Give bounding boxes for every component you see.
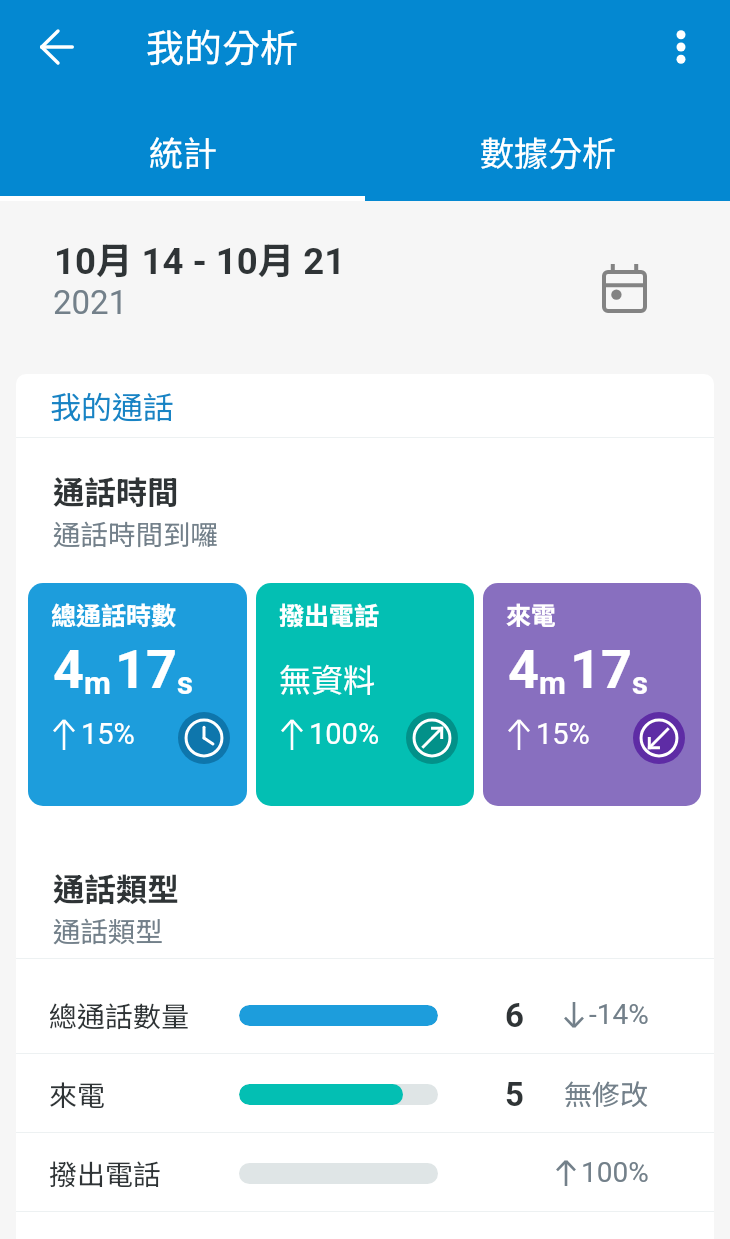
staticText: 2021	[53, 283, 128, 322]
staticText: 撥出電話	[49, 1153, 162, 1194]
staticText: 我的分析	[146, 18, 299, 73]
staticText: 無修改	[564, 1073, 649, 1114]
staticText: 100%	[309, 717, 380, 751]
staticText: 撥出電話	[279, 596, 380, 632]
staticText: 通話類型	[53, 910, 163, 950]
button[interactable]: 數據分析	[365, 101, 730, 201]
staticText: 總通話時數	[51, 596, 177, 632]
staticText: 通話時間到囉	[53, 513, 218, 553]
staticText: 我的通話	[50, 383, 174, 428]
staticText: s	[177, 665, 193, 701]
staticText: m	[84, 665, 111, 701]
staticText: 總通話數量	[49, 995, 190, 1036]
staticText: 4	[53, 638, 84, 701]
staticText: m	[539, 665, 566, 701]
button[interactable]: 10月 14 - 10月 21	[0, 201, 730, 374]
staticText: 10月 14 - 10月 21	[54, 232, 346, 285]
button[interactable]: More options	[637, 3, 725, 91]
staticText: 4	[508, 638, 539, 701]
staticText: 15%	[536, 717, 590, 751]
staticText: 來電	[506, 596, 557, 632]
button[interactable]: Back	[13, 3, 101, 91]
staticText: 17	[570, 638, 632, 701]
button[interactable]: 統計	[0, 101, 365, 201]
button[interactable]: 總通話數量	[16, 959, 714, 1053]
button[interactable]: 總通話時數	[28, 583, 247, 806]
button[interactable]: 來電	[483, 583, 701, 806]
button[interactable]: 來電	[16, 1054, 714, 1132]
staticText: s	[632, 665, 648, 701]
staticText: 通話類型	[53, 865, 179, 910]
button[interactable]: Pick date range	[596, 260, 652, 316]
button[interactable]: 撥出電話	[256, 583, 474, 806]
staticText: 15%	[81, 717, 135, 751]
staticText: 數據分析	[480, 127, 616, 176]
staticText: -14%	[589, 998, 649, 1031]
staticText: 統計	[149, 127, 217, 176]
staticText: 無資料	[279, 655, 376, 701]
staticText: 來電	[49, 1074, 106, 1115]
staticText: 5	[505, 1075, 524, 1114]
staticText: 100%	[581, 1156, 649, 1189]
staticText: 6	[505, 996, 524, 1035]
staticText: 17	[115, 638, 177, 701]
staticText: 通話時間	[53, 468, 179, 513]
button[interactable]: 我的通話	[16, 374, 714, 437]
button[interactable]: 撥出電話	[16, 1133, 714, 1211]
